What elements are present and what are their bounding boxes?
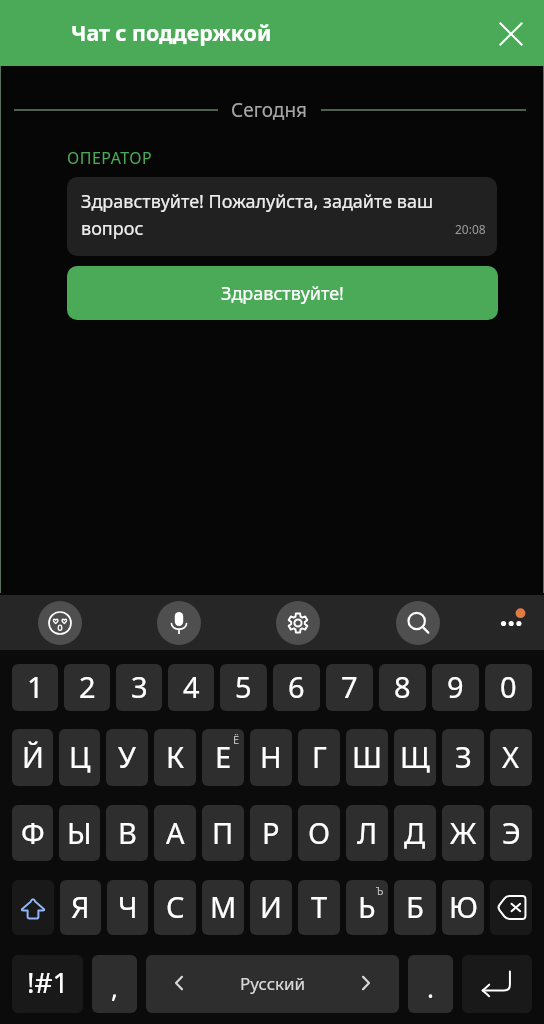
staticText: Ъ [376,883,384,898]
button[interactable]: !#1 [12,955,83,1013]
button[interactable]: И [250,880,292,935]
button[interactable]: А [154,805,196,861]
staticText: О [308,813,331,852]
button[interactable]: М [202,880,244,935]
button[interactable]: 2 [64,664,110,711]
button[interactable]: 7 [326,664,373,711]
staticText: Ы [67,813,92,852]
button[interactable]: Shift [12,880,54,935]
button[interactable]: 9 [432,664,479,711]
button[interactable]: Space, Russian layout [146,955,399,1013]
staticText: Д [404,813,426,852]
button[interactable]: П [202,805,244,861]
button[interactable]: Г [298,729,340,786]
button[interactable]: Ж [442,805,484,861]
button[interactable]: Close [489,11,533,55]
button[interactable]: Ь [346,880,388,935]
staticText: Т [311,887,328,926]
button[interactable]: 1 [12,664,58,711]
button[interactable]: Ф [12,805,53,861]
staticText: А [166,813,185,852]
staticText: 6 [288,667,305,706]
staticText: Здравствуйте! [221,281,344,306]
staticText: 3 [131,667,148,706]
staticText: ОПЕРАТОР [67,147,153,169]
button[interactable]: . [408,955,453,1013]
staticText: Е [215,737,232,776]
staticText: 5 [235,667,252,706]
button[interactable]: Ц [59,729,100,786]
button[interactable]: 0 [485,664,532,711]
staticText: Б [406,887,424,926]
staticText: 20:08 [455,221,486,237]
button[interactable]: 8 [379,664,426,711]
button[interactable]: К [154,729,196,786]
button[interactable]: Д [394,805,436,861]
staticText: К [166,737,185,776]
button[interactable]: 3 [116,664,162,711]
staticText: Ч [118,887,138,926]
staticText: Ц [69,737,91,776]
staticText: Ф [21,813,45,852]
staticText: У [118,737,136,776]
staticText: !#1 [27,963,69,1001]
staticText: Ю [449,887,478,926]
button[interactable]: Здравствуйте! [67,266,498,320]
staticText: Н [260,737,282,776]
staticText: И [260,887,282,926]
staticText: Ш [352,737,383,776]
button[interactable]: 6 [273,664,320,711]
button[interactable]: Ш [346,729,388,786]
staticText: 2 [79,667,96,706]
button[interactable]: Т [298,880,340,935]
button[interactable]: Emoji [38,601,82,645]
staticText: Г [312,737,327,776]
staticText: Сегодня [231,97,308,123]
staticText: 9 [447,667,464,706]
staticText: Ь [358,887,376,926]
button[interactable]: Enter [462,955,532,1013]
staticText: Русский [240,972,306,995]
staticText: Х [502,737,520,776]
button[interactable]: 5 [220,664,267,711]
staticText: Щ [400,737,430,776]
button[interactable]: Е [202,729,244,786]
button[interactable]: Л [346,805,388,861]
staticText: Ж [450,813,477,852]
button[interactable]: Settings [276,601,320,645]
button[interactable]: Р [250,805,292,861]
button[interactable]: More options [489,601,533,645]
staticText: С [166,887,185,926]
button[interactable]: Й [12,729,53,786]
staticText: Л [357,813,378,852]
button[interactable]: 4 [168,664,214,711]
button[interactable]: Backspace [490,880,532,935]
button[interactable]: Я [60,880,101,935]
button[interactable]: О [298,805,340,861]
button[interactable]: , [92,955,137,1013]
button[interactable]: З [442,729,484,786]
staticText: Я [71,887,90,926]
staticText: 0 [500,667,517,706]
button[interactable]: Ч [107,880,148,935]
button[interactable]: Щ [394,729,436,786]
staticText: , [111,970,118,1005]
staticText: Ё [233,732,240,747]
staticText: З [455,737,472,776]
button[interactable]: Н [250,729,292,786]
staticText: Чат с поддержкой [71,18,272,47]
staticText: Й [22,737,44,776]
button[interactable]: Ы [59,805,100,861]
staticText: Э [502,813,521,852]
button[interactable]: Б [394,880,436,935]
button[interactable]: Э [490,805,532,861]
staticText: 4 [183,667,200,706]
button[interactable]: У [106,729,148,786]
button[interactable]: В [106,805,148,861]
button[interactable]: Search [396,601,440,645]
button[interactable]: Х [490,729,532,786]
button[interactable]: Здравствуйте! Пожалуйста, задайте ваш [67,177,497,256]
button[interactable]: Voice input [157,601,201,645]
button[interactable]: Ю [442,880,484,935]
button[interactable]: С [154,880,196,935]
